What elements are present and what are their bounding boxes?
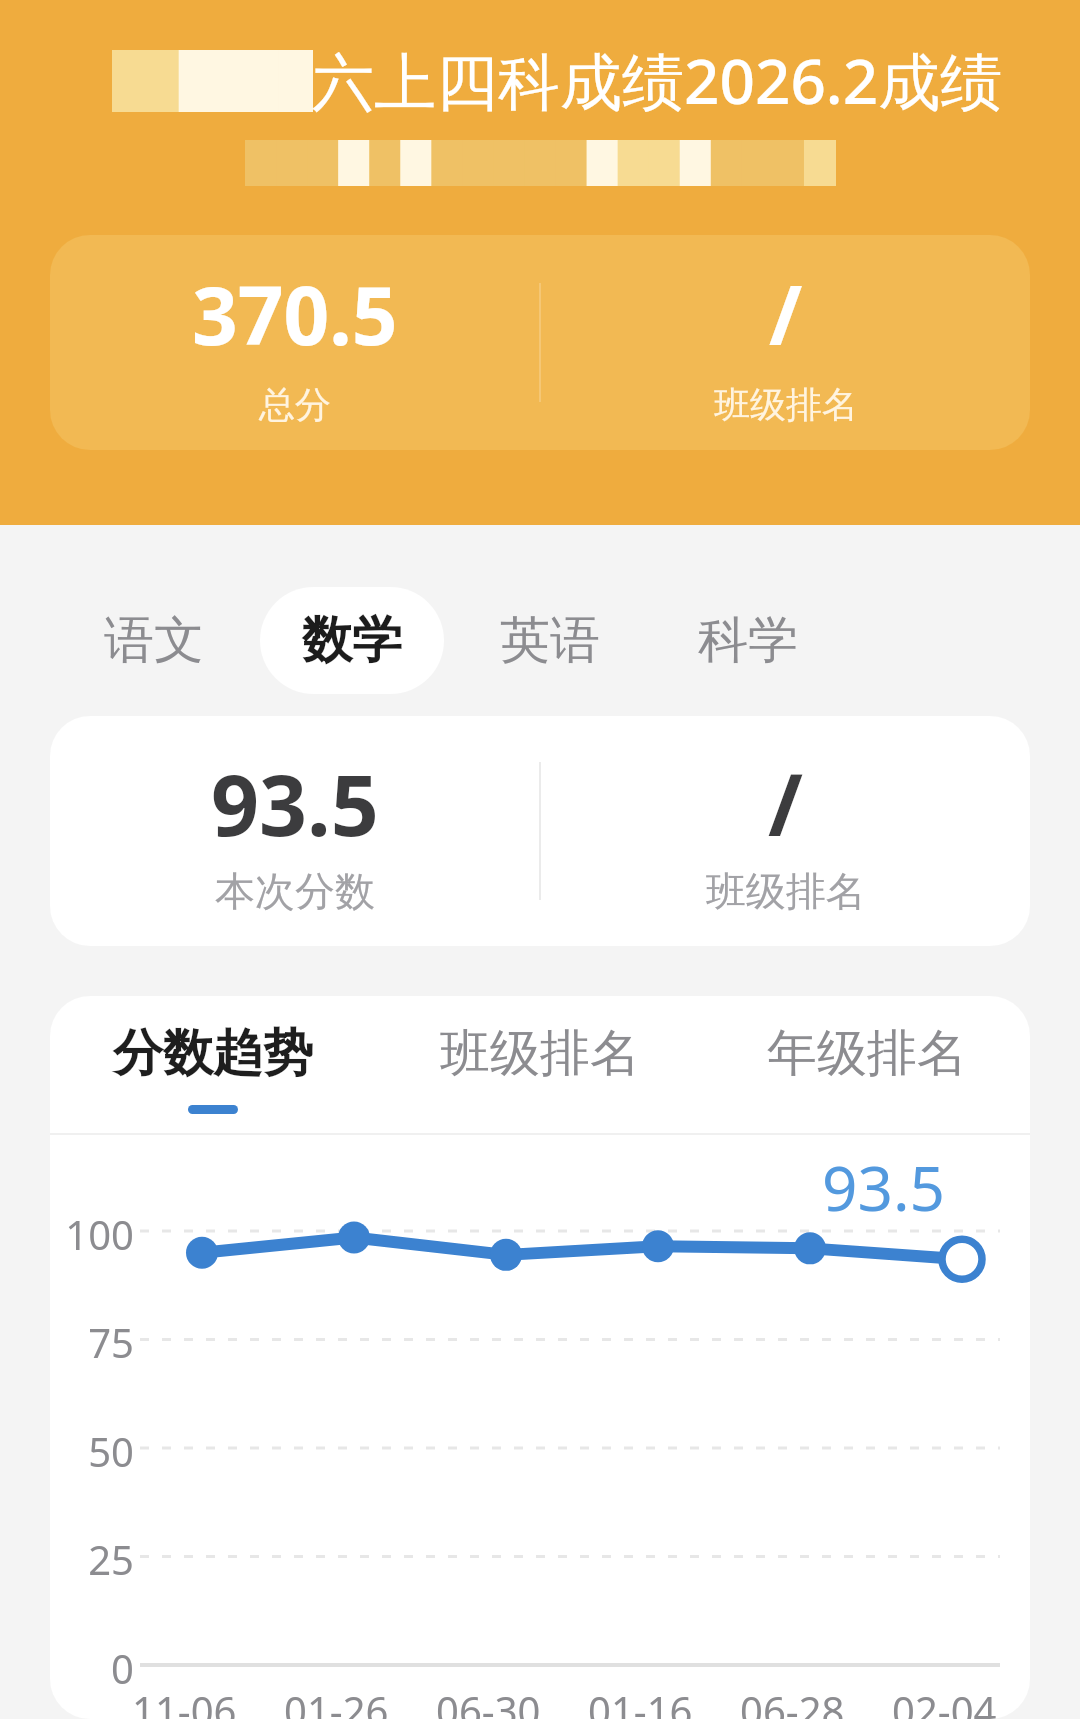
staticText: 01-16 bbox=[588, 1683, 693, 1719]
button[interactable]: 年级排名 bbox=[703, 996, 1030, 1133]
staticText: 11-06 bbox=[132, 1683, 237, 1719]
button[interactable]: / bbox=[541, 235, 1030, 450]
staticText: 班级排名 bbox=[706, 866, 866, 916]
button[interactable]: 93.5 bbox=[50, 716, 539, 946]
staticText: 英语 bbox=[500, 609, 600, 672]
button[interactable]: 班级排名 bbox=[376, 996, 703, 1133]
staticText: 数学 bbox=[302, 609, 402, 672]
staticText: 100 bbox=[56, 1207, 134, 1261]
staticText: 75 bbox=[56, 1315, 134, 1369]
staticText: 六上四科成绩2026.2成绩 bbox=[312, 38, 1003, 123]
staticText: 0 bbox=[56, 1641, 134, 1695]
staticText: 06-28 bbox=[740, 1683, 845, 1719]
staticText: 01-26 bbox=[284, 1683, 389, 1719]
staticText: / bbox=[769, 259, 803, 368]
button[interactable]: 数学 bbox=[260, 587, 444, 694]
staticText: 科学 bbox=[698, 609, 798, 672]
staticText: 班级排名 bbox=[714, 382, 858, 427]
button[interactable]: / bbox=[541, 716, 1030, 946]
staticText: 总分 bbox=[259, 382, 331, 427]
staticText: 50 bbox=[56, 1424, 134, 1478]
staticText: 06-30 bbox=[436, 1683, 541, 1719]
staticText: 25 bbox=[56, 1532, 134, 1586]
button[interactable]: 370.5 bbox=[50, 235, 539, 450]
staticText: 本次分数 bbox=[215, 866, 375, 916]
staticText: 分数趋势 bbox=[113, 1022, 313, 1085]
staticText: 02-04 bbox=[892, 1683, 997, 1719]
button[interactable]: 科学 bbox=[656, 587, 840, 694]
staticText: 93.5 bbox=[822, 1145, 946, 1229]
staticText: 语文 bbox=[104, 609, 204, 672]
button[interactable]: 英语 bbox=[458, 587, 642, 694]
staticText: / bbox=[768, 746, 803, 860]
staticText: 93.5 bbox=[211, 746, 379, 860]
staticText: 年级排名 bbox=[767, 1022, 967, 1085]
button[interactable]: 语文 bbox=[62, 587, 246, 694]
staticText: 370.5 bbox=[192, 259, 398, 368]
staticText: 班级排名 bbox=[440, 1022, 640, 1085]
button[interactable]: 分数趋势 bbox=[50, 996, 376, 1133]
